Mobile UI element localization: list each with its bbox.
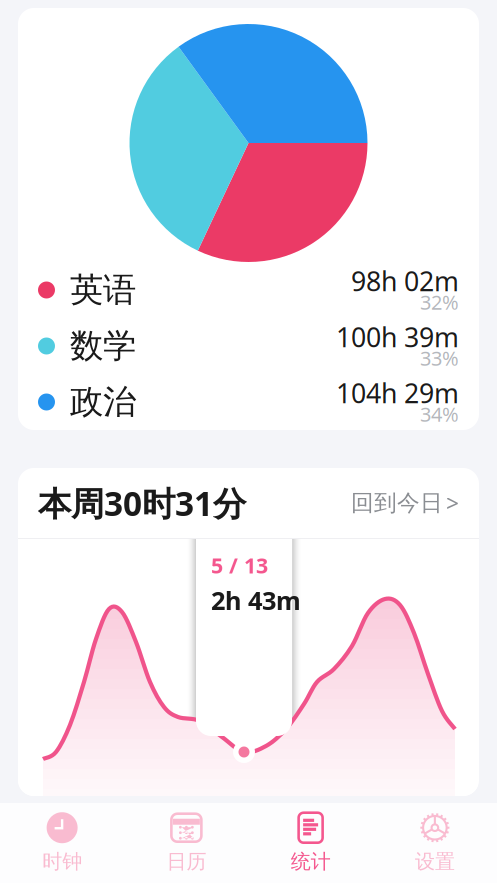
- staticText: 32%: [420, 289, 459, 315]
- button[interactable]: 统计: [248, 803, 373, 883]
- staticText: 98h 02m: [351, 263, 459, 299]
- staticText: 2h 43m: [211, 583, 301, 617]
- staticText: 统计: [291, 849, 331, 874]
- staticText: 日历: [166, 849, 206, 874]
- staticText: 政治: [70, 381, 136, 422]
- staticText: 本周30时31分: [38, 481, 246, 525]
- staticText: 34%: [420, 401, 459, 427]
- button[interactable]: 时钟: [0, 803, 124, 883]
- staticText: 设置: [415, 849, 455, 874]
- staticText: 时钟: [42, 849, 82, 874]
- staticText: 数学: [70, 325, 136, 366]
- staticText: 英语: [70, 269, 136, 310]
- button[interactable]: 日历: [124, 803, 248, 883]
- staticText: 33%: [420, 345, 459, 371]
- staticText: 回到今日: [351, 489, 443, 517]
- staticText: 100h 39m: [336, 319, 459, 355]
- staticText: >: [446, 488, 459, 518]
- staticText: 104h 29m: [336, 375, 459, 411]
- staticText: 5 / 13: [211, 551, 268, 579]
- button[interactable]: 回到今日: [351, 488, 459, 518]
- button[interactable]: 设置: [373, 803, 497, 883]
